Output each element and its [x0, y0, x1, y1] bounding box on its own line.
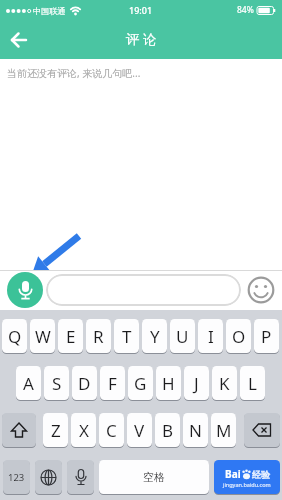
staticText: R [93, 325, 104, 348]
staticText: C [106, 419, 117, 442]
button[interactable]: P [254, 319, 279, 353]
button[interactable]: Q [2, 319, 27, 353]
staticText: H [162, 372, 175, 395]
button[interactable]: G [128, 366, 153, 400]
staticText: E [66, 325, 76, 348]
staticText: Bai [225, 467, 241, 481]
staticText: L [248, 372, 257, 395]
staticText: G [134, 372, 147, 395]
staticText: A [23, 372, 34, 395]
button[interactable]: Z [43, 413, 68, 447]
staticText: Q [8, 325, 22, 348]
button[interactable] [46, 274, 241, 306]
button[interactable]: Y [142, 319, 167, 353]
staticText: U [176, 325, 189, 348]
staticText: T [122, 325, 132, 348]
button[interactable]: A [16, 366, 41, 400]
button[interactable]: O [226, 319, 251, 353]
staticText: 空格 [143, 470, 165, 484]
button[interactable] [7, 272, 43, 308]
button[interactable]: K [212, 366, 237, 400]
button[interactable] [244, 413, 280, 447]
staticText: W [35, 325, 51, 348]
button[interactable]: T [114, 319, 139, 353]
button[interactable]: R [86, 319, 111, 353]
button[interactable] [245, 274, 277, 306]
staticText: D [78, 372, 91, 395]
staticText: V [134, 419, 145, 442]
staticText: jingyan.baidu.com [223, 481, 271, 488]
button[interactable]: H [156, 366, 181, 400]
button[interactable]: 123 [3, 460, 30, 494]
staticText: Y [150, 325, 160, 348]
button[interactable]: C [99, 413, 124, 447]
button[interactable]: M [211, 413, 236, 447]
button[interactable]: U [170, 319, 195, 353]
button[interactable]: V [127, 413, 152, 447]
button[interactable]: 空格 [99, 460, 209, 494]
button[interactable]: I [198, 319, 223, 353]
staticText: Z [51, 419, 61, 442]
staticText: O [232, 325, 246, 348]
button[interactable]: F [100, 366, 125, 400]
staticText: 评 论 [126, 30, 157, 48]
button[interactable] [35, 460, 62, 494]
button[interactable] [6, 27, 32, 53]
button[interactable] [67, 460, 94, 494]
staticText: J [194, 372, 199, 395]
staticText: S [52, 372, 62, 395]
staticText: X [79, 419, 89, 442]
staticText: 84% [237, 4, 254, 16]
button[interactable]: X [71, 413, 96, 447]
button[interactable]: D [72, 366, 97, 400]
button[interactable] [2, 413, 36, 447]
staticText: M [216, 419, 232, 442]
staticText: K [219, 372, 230, 395]
button[interactable]: B [155, 413, 180, 447]
staticText: N [189, 419, 202, 442]
button[interactable]: E [58, 319, 83, 353]
staticText: I [208, 325, 214, 348]
staticText: F [108, 372, 117, 395]
staticText: 中国联通 [33, 6, 66, 16]
staticText: 123 [8, 471, 25, 484]
button[interactable]: N [183, 413, 208, 447]
staticText: P [261, 325, 272, 348]
staticText: 经验 [252, 469, 270, 480]
staticText: 19:01 [129, 4, 153, 16]
button[interactable]: S [44, 366, 69, 400]
button[interactable]: Bai [214, 460, 280, 494]
staticText: B [162, 419, 174, 442]
button[interactable]: W [30, 319, 55, 353]
button[interactable]: J [184, 366, 209, 400]
staticText: 当前还没有评论, 来说几句吧... [7, 66, 141, 80]
button[interactable]: L [240, 366, 265, 400]
